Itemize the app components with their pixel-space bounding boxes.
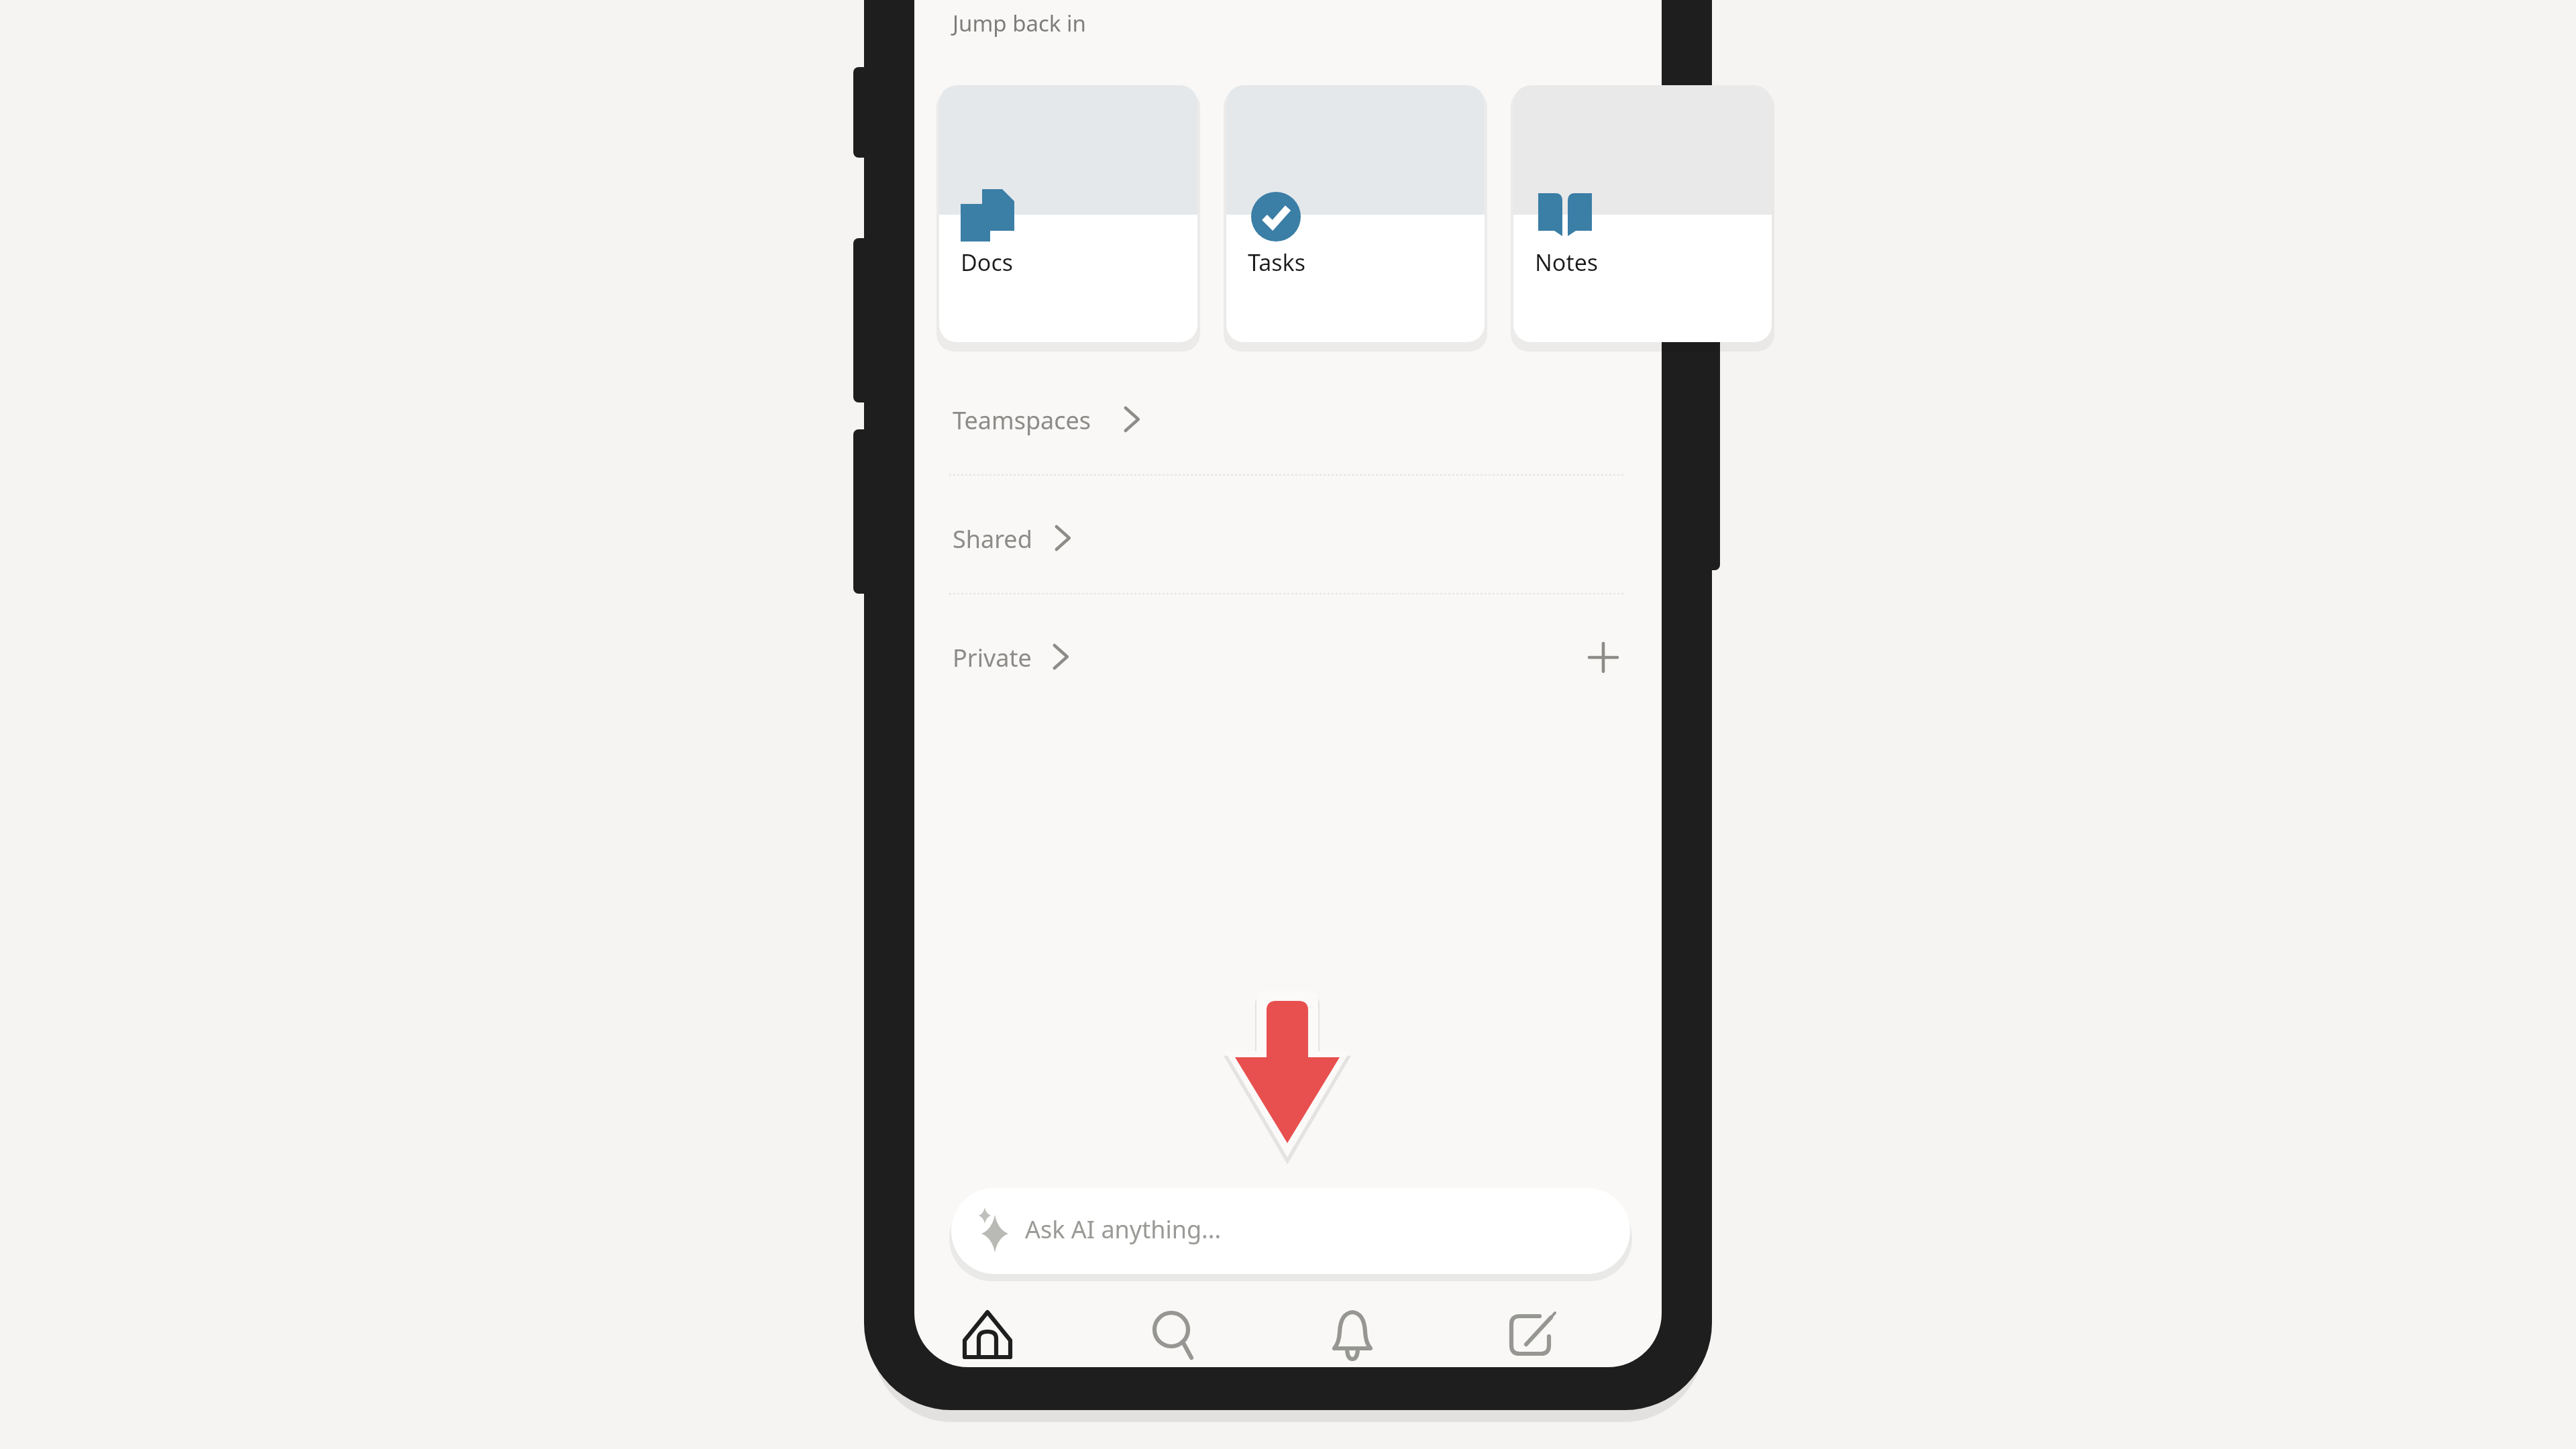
- staticText: Notes: [1535, 247, 1599, 278]
- staticText: Private: [953, 641, 1032, 674]
- button[interactable]: Search: [1112, 1300, 1240, 1370]
- button[interactable]: Docs: [939, 85, 1197, 342]
- button[interactable]: Teamspaces: [949, 388, 1623, 468]
- button[interactable]: Add private page: [1576, 631, 1631, 686]
- button[interactable]: Tasks: [1226, 85, 1485, 342]
- staticText: Tasks: [1248, 247, 1305, 278]
- staticText: Shared: [953, 523, 1032, 555]
- button[interactable]: Shared: [949, 506, 1623, 587]
- button[interactable]: Home: [926, 1300, 1053, 1370]
- button[interactable]: Private: [949, 625, 1553, 706]
- staticText: Teamspaces: [953, 404, 1091, 437]
- button[interactable]: Notes: [1513, 85, 1662, 342]
- staticText: Docs: [961, 247, 1013, 278]
- button[interactable]: New page: [1469, 1300, 1597, 1370]
- button[interactable]: Notifications: [1291, 1300, 1418, 1370]
- button[interactable]: Ask AI anything: [951, 1188, 1630, 1274]
- staticText: Jump back in: [953, 8, 1086, 38]
- staticText: Ask AI anything...: [1025, 1213, 1222, 1246]
